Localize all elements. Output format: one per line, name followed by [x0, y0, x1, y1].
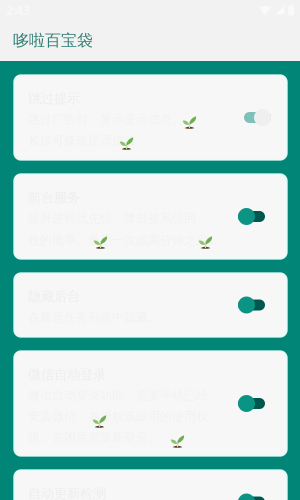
- button[interactable]: Disabled, toggle on: [235, 493, 271, 500]
- staticText: 收的概率。重启一次或两分钟之后生效。: [28, 231, 221, 247]
- staticText: 跳过广告时，显示提示信息。: [28, 112, 184, 127]
- button[interactable]: 自动更新检测: [14, 470, 287, 500]
- button[interactable]: Disabled, toggle on: [235, 296, 271, 314]
- staticText: 哆啦百宝袋: [13, 31, 93, 50]
- staticText: 自动更新检测: [28, 485, 106, 500]
- button[interactable]: 隐藏后台: [14, 273, 287, 337]
- button[interactable]: 前台服务: [14, 174, 287, 259]
- staticText: 长按可修改提示信息。: [28, 133, 148, 148]
- button[interactable]: Enabled, toggle off: [238, 108, 271, 126]
- staticText: 安装微信，并授权该应用的使用权: [28, 409, 208, 424]
- button[interactable]: Disabled, toggle on: [235, 394, 271, 412]
- button[interactable]: 微信自动登录: [14, 351, 287, 456]
- button[interactable]: 跳过提示: [14, 75, 287, 160]
- button[interactable]: Disabled, toggle on: [235, 207, 271, 225]
